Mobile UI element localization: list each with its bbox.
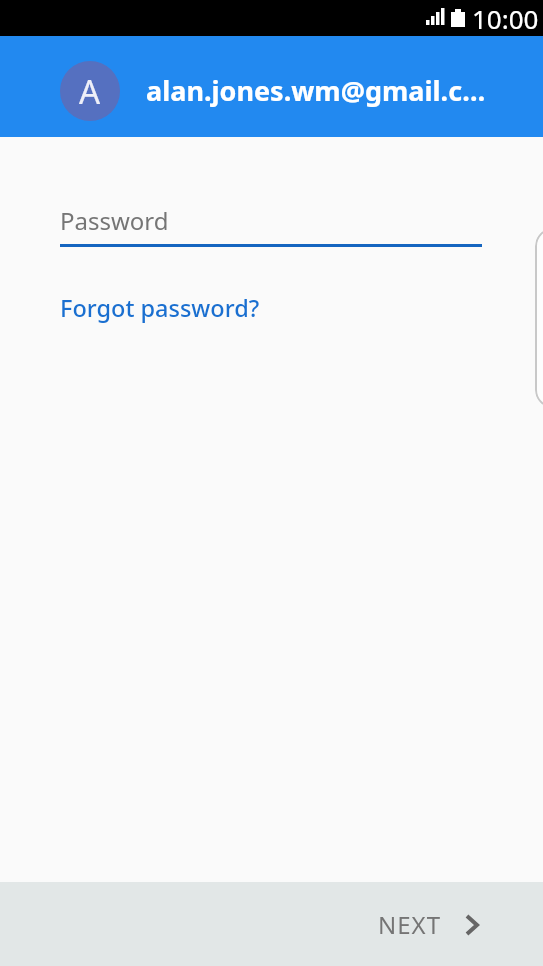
staticText: A [79,69,101,114]
staticText: NEXT [378,908,441,941]
button[interactable]: NEXT [354,888,543,961]
staticText: Forgot password? [60,292,260,324]
button[interactable]: Forgot password? [48,286,272,330]
staticText: Password [60,204,169,237]
staticText: 10:00 [472,1,539,36]
staticText: alan.jones.wm@gmail.c… [146,72,486,109]
button[interactable]: A [60,61,120,121]
